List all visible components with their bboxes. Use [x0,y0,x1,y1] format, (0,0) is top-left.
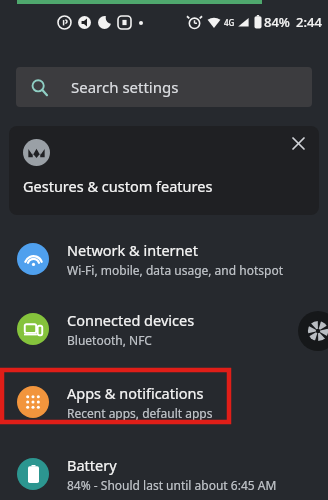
button[interactable]: Dismiss suggestion [285,130,311,156]
button[interactable]: Network & internet [0,228,328,290]
staticText: Network & internet [67,240,198,260]
staticText: Bluetooth, NFC [67,332,152,348]
button[interactable]: Gestures & custom features [9,126,319,215]
staticText: Gestures & custom features [23,176,213,196]
staticText: 2:44 [296,13,322,31]
button[interactable]: Connected devices [0,298,328,360]
staticText: Battery [67,455,117,475]
button[interactable]: Camera [298,311,328,351]
staticText: Wi-Fi, mobile, data usage, and hotspot [67,262,283,278]
staticText: 84% [264,13,290,31]
staticText: Search settings [71,77,179,97]
staticText: Connected devices [67,310,195,330]
staticText: 84% - Should last until about 6:45 AM [67,477,277,493]
staticText: Recent apps, default apps [67,405,213,421]
staticText: Apps & notifications [67,383,204,403]
staticText: 4G [224,17,235,28]
button[interactable]: Battery [0,443,328,500]
button[interactable]: Search settings [16,67,312,107]
button[interactable]: Apps & notifications [0,371,328,433]
